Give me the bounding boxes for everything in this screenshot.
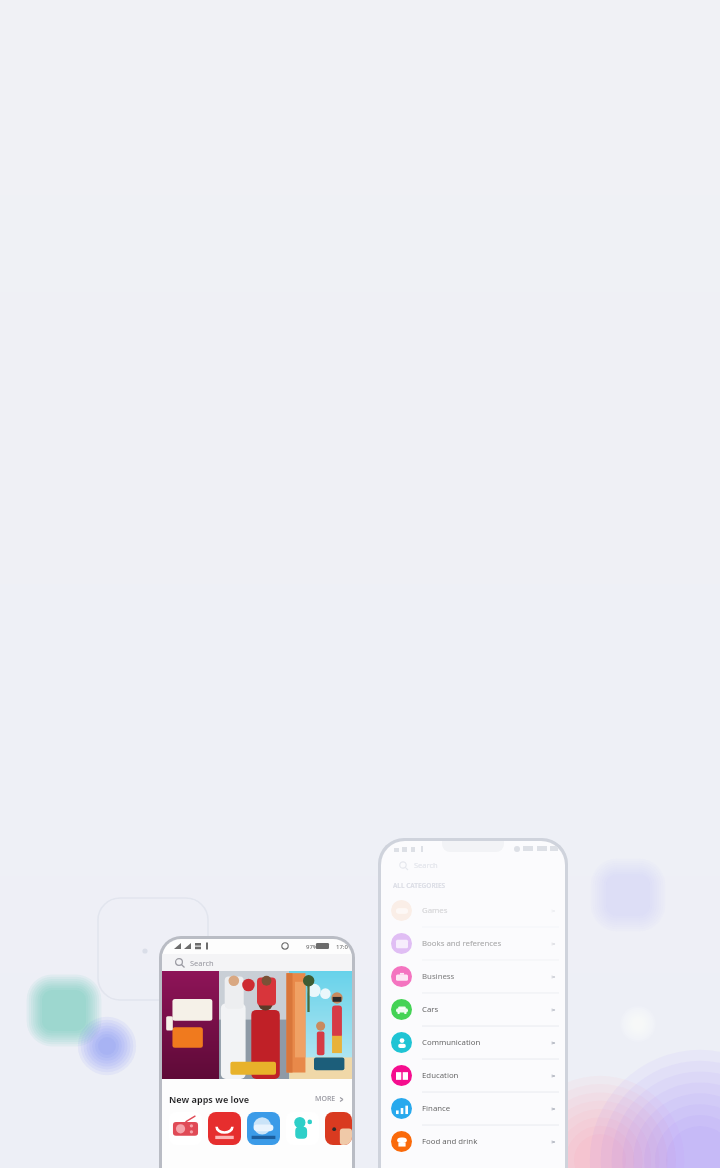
staticText: 17:0 [336, 943, 348, 951]
button[interactable]: Communication [381, 1026, 565, 1059]
button[interactable]: App [208, 1112, 241, 1145]
button[interactable]: App [169, 1112, 202, 1145]
staticText: New apps we love [169, 1093, 250, 1105]
staticText: Food and drink [422, 1136, 549, 1147]
staticText: ALL CATEGORIES [393, 881, 446, 890]
staticText: Books and references [422, 938, 549, 949]
button[interactable]: Search [381, 855, 565, 875]
staticText: Games [422, 905, 549, 916]
staticText: Cars [422, 1004, 549, 1015]
button[interactable]: Education [381, 1059, 565, 1092]
staticText: Business [422, 971, 549, 982]
button[interactable]: App [325, 1112, 352, 1145]
staticText: 97% [306, 943, 318, 951]
button[interactable]: Cars [381, 993, 565, 1026]
button[interactable]: Play and Win banner [162, 971, 352, 1079]
staticText: MORE [315, 1094, 336, 1104]
button[interactable]: Finance [381, 1092, 565, 1125]
staticText: Finance [422, 1103, 549, 1114]
button[interactable]: Search [162, 954, 352, 971]
button[interactable]: Books and references [381, 927, 565, 960]
button[interactable]: App [247, 1112, 280, 1145]
staticText: Search [414, 860, 438, 870]
button[interactable]: Food and drink [381, 1125, 565, 1158]
button[interactable]: Business [381, 960, 565, 993]
button[interactable]: Games [381, 894, 565, 927]
staticText: Education [422, 1070, 549, 1081]
staticText: Communication [422, 1037, 549, 1048]
button[interactable]: App [286, 1112, 319, 1145]
button[interactable]: MORE [315, 1094, 345, 1104]
staticText: Search [190, 958, 214, 968]
